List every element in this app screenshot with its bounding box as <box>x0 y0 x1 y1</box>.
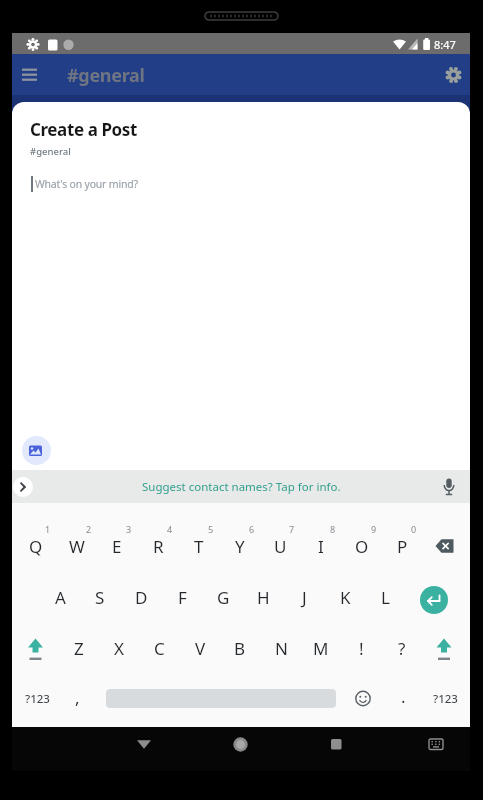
button[interactable]: G <box>204 575 242 619</box>
staticText: F <box>178 586 187 609</box>
staticText: 8 <box>330 523 336 535</box>
button[interactable] <box>17 632 55 664</box>
button[interactable]: M <box>302 626 340 670</box>
staticText: L <box>381 586 390 609</box>
staticText: , <box>75 686 80 709</box>
staticText: ! <box>359 637 364 660</box>
button[interactable] <box>14 60 44 90</box>
staticText: A <box>55 586 66 609</box>
button[interactable]: Y <box>221 524 259 568</box>
button[interactable]: K <box>326 575 364 619</box>
button[interactable]: L <box>366 575 404 619</box>
button[interactable] <box>348 682 378 714</box>
staticText: G <box>217 586 230 609</box>
button[interactable]: N <box>262 626 300 670</box>
staticText: 1 <box>45 523 51 535</box>
button[interactable] <box>426 632 464 664</box>
staticText: E <box>112 535 122 558</box>
staticText: Suggest contact names? Tap for info. <box>142 479 341 495</box>
staticText: 9 <box>371 523 377 535</box>
staticText: J <box>302 586 307 609</box>
staticText: . <box>401 685 406 708</box>
button[interactable]: , <box>62 677 92 717</box>
button[interactable] <box>416 730 456 768</box>
button[interactable]: ? <box>383 626 421 670</box>
staticText: 4 <box>167 523 173 535</box>
staticText: #general <box>67 63 145 88</box>
staticText: 3 <box>126 523 132 535</box>
staticText: N <box>275 637 288 660</box>
button[interactable]: D <box>122 575 160 619</box>
staticText: 2 <box>86 523 92 535</box>
staticText: 6 <box>249 523 255 535</box>
staticText: M <box>313 637 329 660</box>
button[interactable] <box>420 586 448 614</box>
button[interactable]: B <box>221 626 259 670</box>
staticText: W <box>69 535 85 558</box>
staticText: K <box>340 586 351 609</box>
button[interactable]: I <box>302 524 340 568</box>
button[interactable]: O <box>343 524 381 568</box>
staticText: R <box>153 535 164 558</box>
button[interactable] <box>316 730 356 768</box>
staticText: D <box>135 586 148 609</box>
button[interactable]: V <box>181 626 219 670</box>
button[interactable]: W <box>58 524 96 568</box>
staticText: H <box>257 586 270 609</box>
staticText: ?123 <box>25 691 50 707</box>
staticText: X <box>114 637 124 660</box>
staticText: O <box>355 535 369 558</box>
staticText: C <box>154 637 165 660</box>
button[interactable]: X <box>100 626 138 670</box>
staticText: U <box>274 535 287 558</box>
button[interactable]: F <box>163 575 201 619</box>
button[interactable]: U <box>261 524 299 568</box>
button[interactable]: P <box>383 524 421 568</box>
button[interactable]: H <box>244 575 282 619</box>
button[interactable] <box>425 530 463 562</box>
staticText: What's on your mind? <box>35 177 138 191</box>
button[interactable] <box>438 60 468 90</box>
staticText: V <box>195 637 206 660</box>
button[interactable]: . <box>388 676 418 716</box>
button[interactable]: C <box>140 626 178 670</box>
staticText: B <box>234 637 246 660</box>
staticText: 7 <box>289 523 295 535</box>
button[interactable] <box>220 730 260 768</box>
button[interactable] <box>13 477 33 497</box>
staticText: S <box>95 586 105 609</box>
staticText: ?123 <box>433 691 458 707</box>
staticText: I <box>318 535 324 558</box>
button[interactable] <box>22 436 51 465</box>
staticText: Q <box>29 535 43 558</box>
button[interactable]: ! <box>342 626 380 670</box>
button[interactable]: Q <box>17 524 55 568</box>
staticText: Z <box>74 637 84 660</box>
staticText: T <box>194 535 204 558</box>
button[interactable]: R <box>139 524 177 568</box>
staticText: Create a Post <box>30 118 137 141</box>
button[interactable]: S <box>81 575 119 619</box>
button[interactable]: ?123 <box>17 679 57 719</box>
staticText: #general <box>30 145 71 158</box>
button[interactable]: E <box>98 524 136 568</box>
button[interactable] <box>124 730 164 768</box>
staticText: P <box>397 535 408 558</box>
staticText: ? <box>398 637 406 660</box>
button[interactable] <box>12 470 470 503</box>
staticText: 5 <box>208 523 214 535</box>
button[interactable]: Z <box>60 626 98 670</box>
staticText: Y <box>235 535 245 558</box>
staticText: 8:47 <box>434 37 456 52</box>
staticText: 0 <box>411 523 417 535</box>
button[interactable]: T <box>180 524 218 568</box>
button[interactable]: J <box>285 575 323 619</box>
button[interactable]: A <box>41 575 79 619</box>
button[interactable]: ?123 <box>425 679 465 719</box>
